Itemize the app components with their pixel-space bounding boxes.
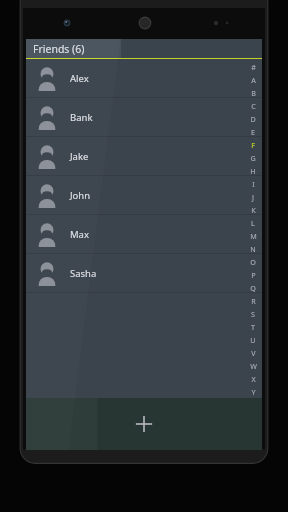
staticText: C <box>251 101 256 111</box>
staticText: K <box>251 205 256 215</box>
staticText: John <box>70 189 91 202</box>
staticText: # <box>251 62 256 72</box>
staticText: Max <box>70 228 89 241</box>
button[interactable]: Add friend <box>26 398 262 450</box>
staticText: V <box>251 348 256 358</box>
staticText: A <box>251 75 256 85</box>
staticText: P <box>251 270 256 280</box>
staticText: R <box>251 296 256 306</box>
button[interactable]: Alex <box>26 59 262 97</box>
staticText: Sasha <box>70 267 97 280</box>
button[interactable]: Max <box>26 215 262 253</box>
staticText: X <box>251 374 256 384</box>
staticText: N <box>250 244 256 254</box>
button[interactable]: Jake <box>26 137 262 175</box>
staticText: Alex <box>70 72 89 85</box>
staticText: B <box>251 88 256 98</box>
staticText: J <box>252 192 254 202</box>
staticText: Q <box>250 283 256 293</box>
staticText: L <box>251 218 255 228</box>
staticText: Friends (6) <box>33 42 85 56</box>
staticText: U <box>250 335 256 345</box>
staticText: Y <box>251 387 256 397</box>
button[interactable]: Friends (6) <box>26 39 262 58</box>
button[interactable]: John <box>26 176 262 214</box>
staticText: I <box>252 179 255 189</box>
button[interactable]: Sasha <box>26 254 262 292</box>
button[interactable]: Bank <box>26 98 262 136</box>
staticText: H <box>250 166 256 176</box>
staticText: W <box>250 361 257 371</box>
staticText: D <box>250 114 256 124</box>
staticText: G <box>250 153 256 163</box>
staticText: M <box>250 231 257 241</box>
staticText: T <box>251 322 255 332</box>
staticText: Jake <box>70 150 89 163</box>
staticText: O <box>250 257 256 267</box>
staticText: F <box>251 140 255 150</box>
staticText: Bank <box>70 111 93 124</box>
staticText: E <box>251 127 255 137</box>
staticText: S <box>251 309 255 319</box>
button[interactable]: Alphabet index <box>26 60 259 398</box>
